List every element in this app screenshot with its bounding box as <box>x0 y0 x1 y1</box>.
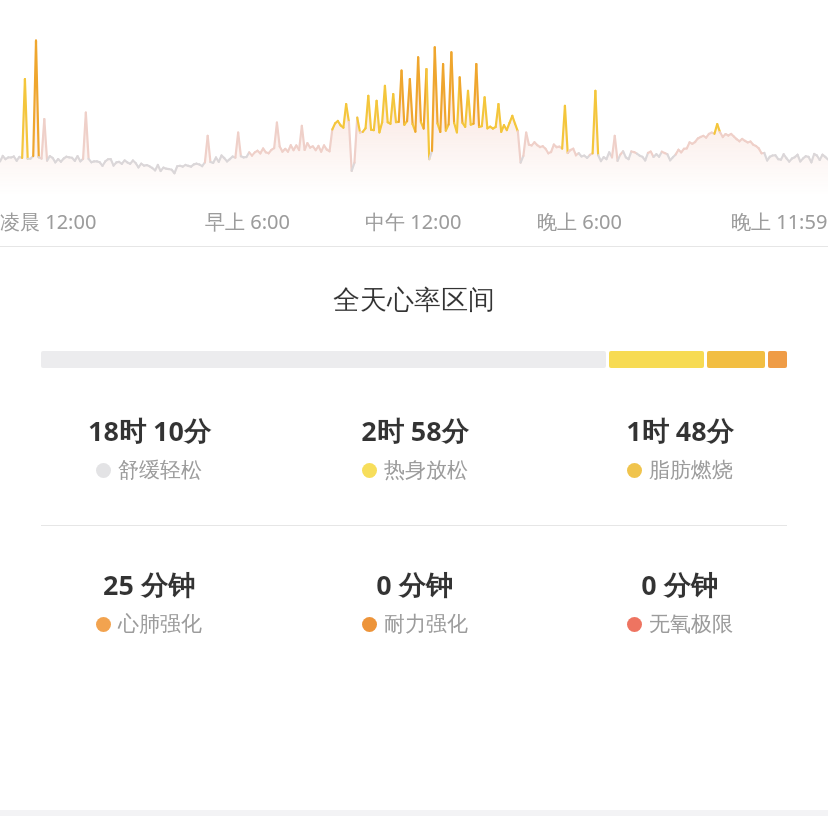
staticText: 无氧极限 <box>649 611 733 637</box>
staticText: 18时 10分 <box>88 412 211 449</box>
staticText: 1时 48分 <box>626 412 734 449</box>
staticText: 0 分钟 <box>641 566 718 603</box>
staticText: 晚上 6:00 <box>537 208 622 235</box>
button[interactable]: 0 分钟 <box>282 564 547 639</box>
staticText: 脂肪燃烧 <box>649 457 733 483</box>
staticText: 热身放松 <box>384 457 468 483</box>
staticText: 耐力强化 <box>384 611 468 637</box>
staticText: 舒缓轻松 <box>118 457 202 483</box>
button[interactable]: 25 分钟 <box>16 564 282 639</box>
staticText: 全天心率区间 <box>333 283 495 317</box>
staticText: 中午 12:00 <box>365 208 462 235</box>
staticText: 0 分钟 <box>376 566 453 603</box>
button[interactable]: 2时 58分 <box>282 410 547 485</box>
staticText: 早上 6:00 <box>205 208 290 235</box>
staticText: 心肺强化 <box>118 611 202 637</box>
button[interactable]: 1时 48分 <box>547 410 812 485</box>
staticText: 25 分钟 <box>103 566 195 603</box>
button[interactable]: 18时 10分 <box>16 410 282 485</box>
staticText: 晚上 11:59 <box>731 208 828 235</box>
button[interactable]: 0 分钟 <box>547 564 812 639</box>
staticText: 凌晨 12:00 <box>0 208 97 235</box>
staticText: 2时 58分 <box>361 412 469 449</box>
